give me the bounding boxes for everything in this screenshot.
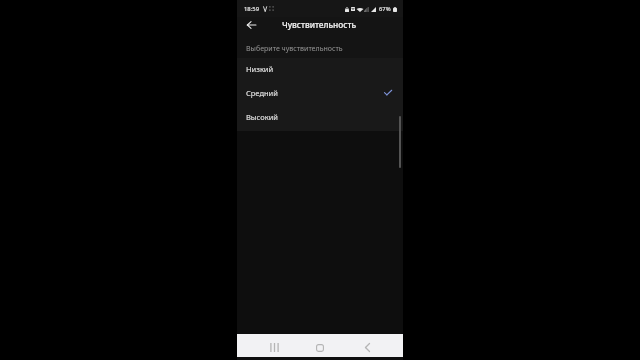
staticText: Средний (246, 88, 278, 98)
button[interactable]: Home (297, 334, 343, 357)
staticText: Низкий (246, 64, 274, 74)
button[interactable]: Средний (237, 81, 403, 105)
button[interactable]: Высокий (237, 105, 403, 129)
button[interactable]: Низкий (237, 57, 403, 81)
staticText: Чувствительность (282, 19, 357, 30)
staticText: 67% (379, 5, 391, 13)
staticText: 18:59 (244, 5, 260, 13)
button[interactable]: Recent apps (251, 334, 297, 357)
staticText: Высокий (246, 112, 278, 122)
button[interactable]: Back (242, 16, 260, 34)
button[interactable]: Back (344, 334, 390, 357)
staticText: Выберите чувствительность (246, 43, 343, 53)
